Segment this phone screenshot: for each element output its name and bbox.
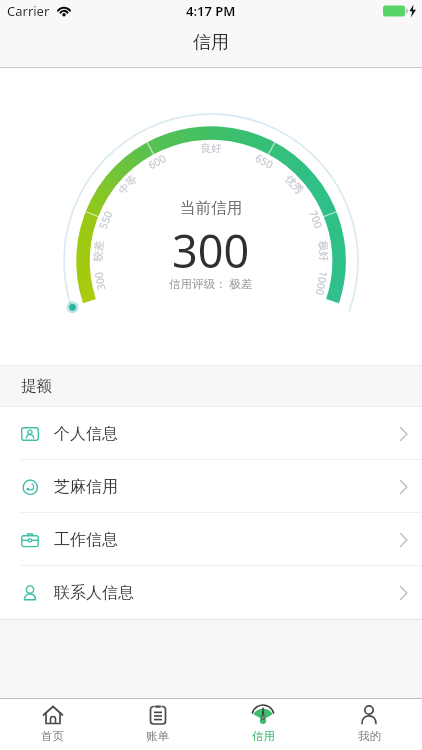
button[interactable]: 首页 bbox=[0, 699, 105, 750]
staticText: 账单 bbox=[146, 729, 169, 743]
button[interactable]: 工作信息 bbox=[0, 513, 422, 566]
staticText: 首页 bbox=[41, 729, 64, 743]
button[interactable]: 个人信息 bbox=[0, 407, 422, 460]
button[interactable]: 芝麻信用 bbox=[0, 460, 422, 513]
staticText: 我的 bbox=[358, 729, 381, 743]
staticText: 信用评级： 极差 bbox=[169, 276, 253, 292]
staticText: 提额 bbox=[21, 376, 52, 396]
button[interactable]: 联系人信息 bbox=[0, 566, 422, 619]
staticText: 工作信息 bbox=[54, 530, 118, 550]
staticText: 当前信用 bbox=[180, 198, 242, 218]
staticText: 芝麻信用 bbox=[54, 477, 118, 497]
button[interactable]: 信用 bbox=[210, 699, 316, 750]
button[interactable]: 账单 bbox=[105, 699, 210, 750]
staticText: 信用 bbox=[193, 31, 229, 54]
staticText: 4:17 PM bbox=[186, 2, 236, 20]
staticText: 信用 bbox=[252, 729, 275, 743]
button[interactable]: 我的 bbox=[316, 699, 422, 750]
staticText: 联系人信息 bbox=[54, 583, 134, 603]
staticText: 个人信息 bbox=[54, 424, 118, 444]
staticText: Carrier bbox=[7, 2, 50, 20]
staticText: 300 bbox=[172, 220, 250, 281]
